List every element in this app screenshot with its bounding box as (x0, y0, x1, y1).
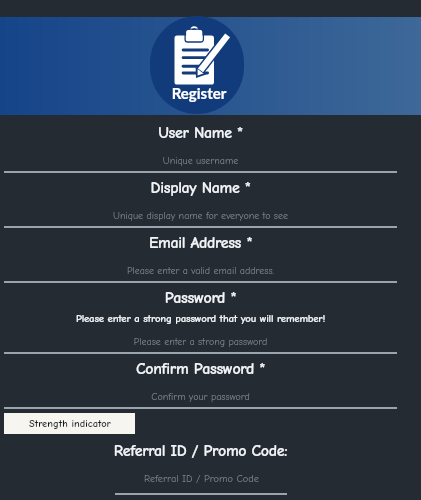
staticText: Strength indicator (29, 418, 111, 430)
staticText: Email Address * (4, 234, 397, 252)
staticText: Please enter a strong password (4, 336, 397, 348)
staticText: Please enter a strong password that you … (4, 312, 397, 324)
staticText: Referral ID / Promo Code (144, 473, 259, 485)
staticText: Unique username (4, 155, 397, 167)
staticText: User Name * (4, 124, 397, 142)
staticText: Register (152, 84, 244, 102)
staticText: Referral ID / Promo Code: (4, 442, 397, 460)
staticText: Unique display name for everyone to see (4, 210, 397, 222)
staticText: Please enter a valid email address. (4, 265, 397, 277)
staticText: Password * (4, 289, 397, 307)
staticText: Confirm Password * (4, 360, 397, 378)
staticText: Confirm your password (4, 391, 397, 403)
button[interactable]: Register (150, 16, 244, 114)
staticText: Display Name * (4, 179, 397, 197)
button[interactable]: Strength indicator (4, 413, 135, 434)
